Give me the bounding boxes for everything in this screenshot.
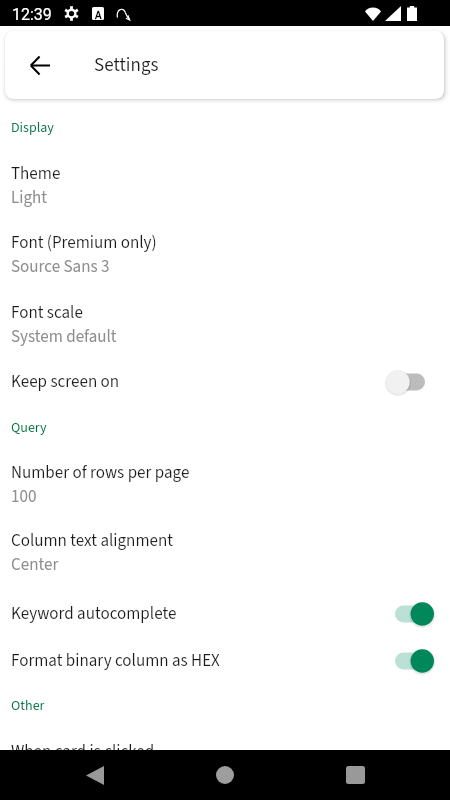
staticText: Other	[11, 696, 45, 716]
staticText: Expand card	[11, 764, 99, 788]
staticText: Theme	[11, 162, 61, 186]
staticText: Font scale	[11, 301, 83, 325]
button[interactable]: Keyword autocomplete	[11, 588, 439, 639]
button[interactable]: Recent apps	[325, 752, 385, 798]
staticText: Light	[11, 186, 48, 210]
button[interactable]: Home	[195, 752, 255, 798]
staticText: 100	[11, 485, 37, 509]
staticText: Format binary column as HEX	[11, 649, 391, 673]
staticText: Column text alignment	[11, 529, 173, 553]
button[interactable]: Format binary column as HEX	[11, 639, 439, 683]
staticText: Settings	[94, 52, 159, 79]
button[interactable]: Number of rows per page	[11, 453, 439, 517]
staticText: Number of rows per page	[11, 461, 190, 485]
button[interactable]: Theme	[11, 149, 439, 222]
staticText: 12:39	[12, 5, 52, 24]
staticText: When card is clicked	[11, 740, 155, 764]
button[interactable]: Keep screen on	[11, 362, 439, 402]
button[interactable]: When card is clicked	[11, 729, 439, 799]
staticText: Keep screen on	[11, 370, 391, 394]
staticText: Keyword autocomplete	[11, 602, 391, 626]
staticText: Center	[11, 553, 59, 577]
button[interactable]: Back	[65, 752, 125, 798]
staticText: System default	[11, 325, 117, 349]
staticText: Font (Premium only)	[11, 231, 157, 255]
button[interactable]: Navigate up	[18, 43, 62, 87]
staticText: Display	[11, 118, 54, 138]
staticText: A	[95, 7, 102, 20]
staticText: Query	[11, 418, 47, 438]
button[interactable]: Font (Premium only)	[11, 222, 439, 288]
button[interactable]: Column text alignment	[11, 517, 439, 588]
button[interactable]: Font scale	[11, 288, 439, 362]
staticText: Source Sans 3	[11, 255, 110, 279]
